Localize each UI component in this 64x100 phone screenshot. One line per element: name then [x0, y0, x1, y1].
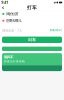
staticText: 打车 — [27, 5, 37, 11]
staticText: 拼座出行更省钱 — [4, 60, 25, 63]
staticText: 顺风车 — [4, 55, 13, 59]
button[interactable]: 我的位置 — [0, 10, 64, 17]
button[interactable]: Back — [1, 6, 5, 10]
staticText: 现在出发 · 1人 — [2, 28, 22, 32]
staticText: 9:41 — [1, 0, 8, 5]
button[interactable]: 您要去哪儿 — [0, 17, 64, 24]
staticText: 您要去哪儿 — [6, 18, 21, 23]
staticText: 同时呼叫 — [50, 28, 62, 32]
button[interactable]: 顺风车 — [2, 53, 62, 71]
button[interactable]: 叫车 — [2, 37, 62, 43]
staticText: 我的位置 — [6, 12, 18, 16]
staticText: 叫车 — [28, 37, 36, 42]
button[interactable] — [2, 47, 62, 51]
